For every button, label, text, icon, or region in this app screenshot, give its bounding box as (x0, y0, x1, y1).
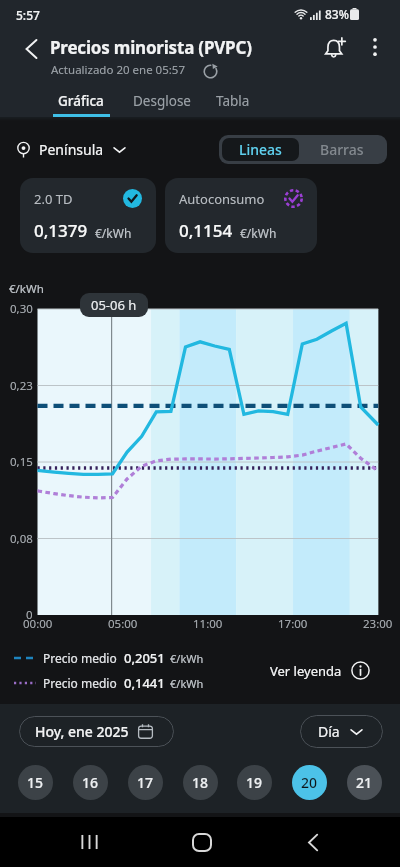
staticText: 19 (246, 773, 263, 792)
button[interactable]: Back (11, 28, 52, 69)
staticText: Gráfica (58, 92, 104, 110)
button[interactable]: Tabla (208, 88, 258, 117)
staticText: €/kWh (170, 651, 204, 666)
button[interactable]: 17 (128, 765, 163, 800)
staticText: 18 (192, 773, 209, 792)
button[interactable]: 16 (73, 765, 108, 800)
button[interactable]: 20 (292, 765, 327, 800)
button[interactable]: Desglose (115, 88, 208, 117)
staticText: €/kWh (95, 225, 132, 241)
button[interactable]: Recent apps (66, 817, 112, 867)
button[interactable]: 15 (18, 765, 53, 800)
button[interactable]: Península (16, 140, 126, 159)
button[interactable]: 2.0 TD (20, 178, 156, 253)
button[interactable]: Ver leyenda (270, 661, 370, 680)
staticText: €/kWh (170, 676, 204, 691)
staticText: €/kWh (9, 281, 44, 297)
button[interactable]: Home (179, 817, 225, 867)
button[interactable]: Refresh (198, 59, 222, 83)
staticText: 0,2051 (124, 649, 165, 667)
staticText: 16 (82, 773, 99, 792)
staticText: Tabla (216, 92, 250, 110)
staticText: 0,08 (10, 531, 33, 547)
button[interactable]: Autoconsumo (165, 178, 317, 253)
staticText: 00:00 (23, 616, 53, 632)
staticText: 17 (137, 773, 154, 792)
staticText: 83% (325, 6, 349, 22)
button[interactable]: More options (356, 28, 394, 66)
staticText: 0,1154 (179, 219, 233, 242)
staticText: Barras (320, 140, 364, 159)
staticText: 2.0 TD (34, 190, 73, 208)
staticText: Precios minorista (PVPC) (50, 36, 252, 59)
button[interactable]: Gráfica (47, 88, 115, 117)
button[interactable]: 18 (183, 765, 218, 800)
staticText: 05:00 (108, 616, 138, 632)
staticText: 0,23 (10, 378, 33, 394)
staticText: Precio medio (43, 650, 117, 666)
staticText: 20 (301, 773, 318, 792)
staticText: Precio medio (43, 675, 117, 691)
staticText: 0,1441 (124, 674, 165, 692)
staticText: 23:00 (363, 616, 393, 632)
staticText: 5:57 (16, 7, 40, 23)
button[interactable]: Lineas (222, 138, 299, 161)
staticText: Península (39, 140, 104, 159)
button[interactable]: Día (300, 715, 383, 748)
staticText: 0,1379 (34, 219, 88, 242)
staticText: 21 (356, 773, 373, 792)
staticText: Lineas (239, 140, 282, 159)
staticText: Desglose (133, 92, 191, 110)
staticText: 17:00 (278, 616, 308, 632)
button[interactable]: 21 (347, 765, 382, 800)
button[interactable]: Hoy, ene 2025 (19, 716, 174, 747)
staticText: Día (318, 722, 340, 741)
button[interactable]: Barras (299, 138, 384, 161)
staticText: 15 (27, 773, 44, 792)
staticText: €/kWh (240, 225, 277, 241)
button[interactable]: 19 (237, 765, 272, 800)
staticText: 0,30 (10, 301, 33, 317)
staticText: Hoy, ene 2025 (35, 722, 129, 741)
staticText: Actualizado 20 ene 05:57 (51, 62, 185, 78)
staticText: 0 (26, 607, 33, 623)
staticText: Autoconsumo (179, 190, 265, 208)
button[interactable]: Add price alert (312, 26, 356, 70)
staticText: Ver leyenda (270, 662, 342, 680)
staticText: 11:00 (193, 616, 223, 632)
button[interactable]: Back (290, 817, 336, 867)
staticText: 0,15 (10, 454, 33, 470)
staticText: 05-06 h (91, 296, 137, 314)
